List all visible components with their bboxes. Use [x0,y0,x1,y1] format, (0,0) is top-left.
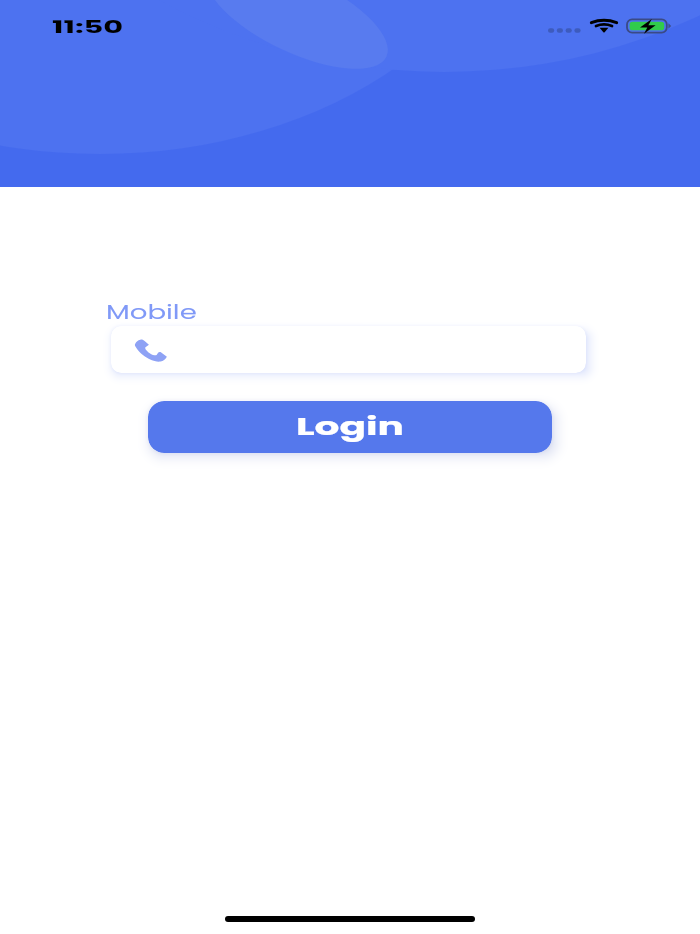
staticText: Login [296,410,405,444]
button[interactable]: Login [148,401,552,453]
staticText: Mobile [106,298,197,326]
other: Phone [134,336,169,364]
staticText: 11:50 [52,15,124,39]
button[interactable]: Mobile number input [111,326,586,373]
